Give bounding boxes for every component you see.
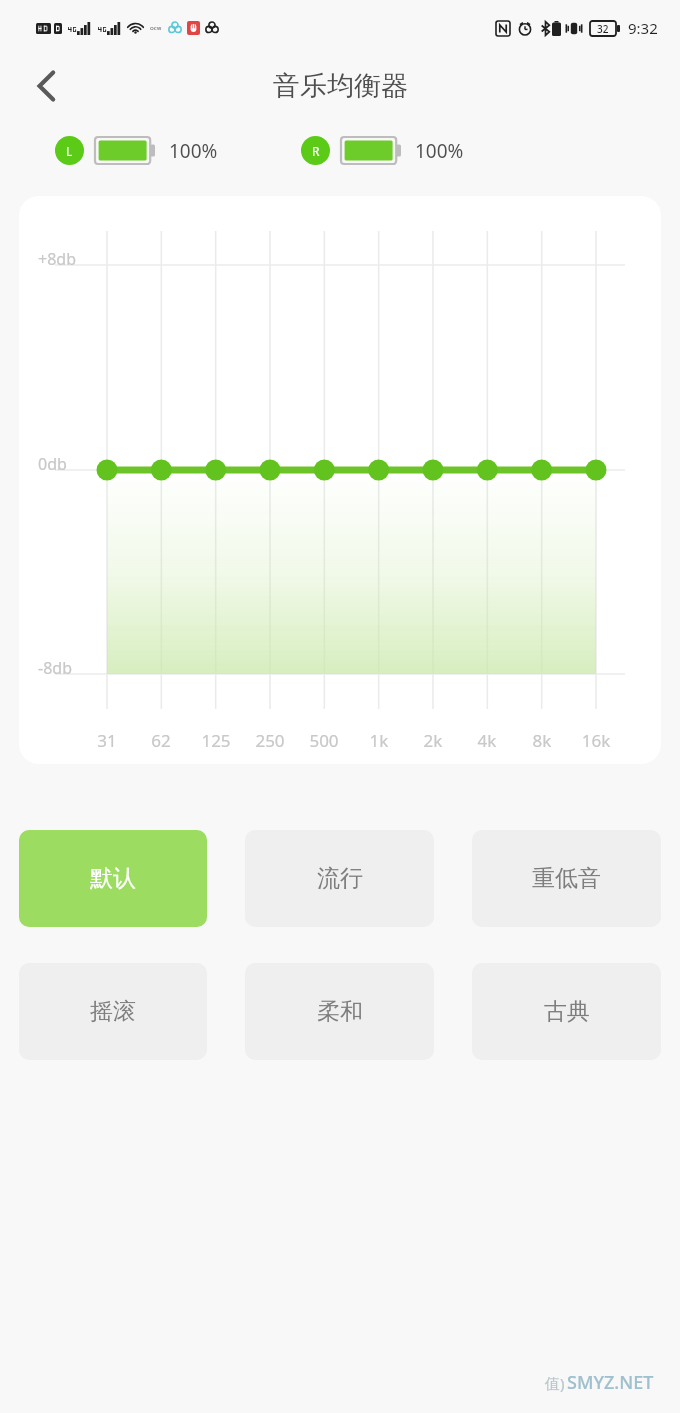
staticText: SMYZ.NET: [567, 1370, 654, 1395]
button[interactable]: 流行: [245, 830, 434, 927]
staticText: 重低音: [532, 864, 601, 893]
staticText: +8db: [38, 248, 76, 270]
button[interactable]: 默认: [19, 830, 207, 927]
staticText: 125: [186, 729, 246, 752]
staticText: 100%: [169, 138, 218, 164]
staticText: ᴏᴄᴡ: [150, 24, 162, 32]
staticText: 默认: [90, 864, 136, 893]
button[interactable]: 柔和: [245, 963, 434, 1060]
staticText: 摇滚: [90, 997, 136, 1026]
staticText: 32: [597, 22, 609, 36]
staticText: 值): [545, 1373, 565, 1393]
staticText: 16k: [566, 729, 626, 752]
staticText: 柔和: [317, 997, 363, 1026]
staticText: 流行: [317, 864, 363, 893]
staticText: 音乐均衡器: [273, 69, 408, 103]
staticText: 1k: [349, 729, 409, 752]
staticText: 62: [131, 729, 191, 752]
staticText: 8k: [512, 729, 572, 752]
staticText: 500: [294, 729, 354, 752]
staticText: R: [312, 143, 320, 159]
staticText: 古典: [544, 997, 590, 1026]
staticText: -8db: [38, 657, 72, 679]
staticText: 9:32: [628, 18, 658, 38]
button[interactable]: 摇滚: [19, 963, 207, 1060]
button[interactable]: Back: [20, 59, 74, 113]
staticText: 250: [240, 729, 300, 752]
staticText: 31: [77, 729, 137, 752]
staticText: L: [66, 143, 73, 159]
button[interactable]: 重低音: [472, 830, 661, 927]
button[interactable]: 古典: [472, 963, 661, 1060]
staticText: 2k: [403, 729, 463, 752]
staticText: 4k: [457, 729, 517, 752]
staticText: 100%: [415, 138, 464, 164]
staticText: 0db: [38, 453, 67, 475]
